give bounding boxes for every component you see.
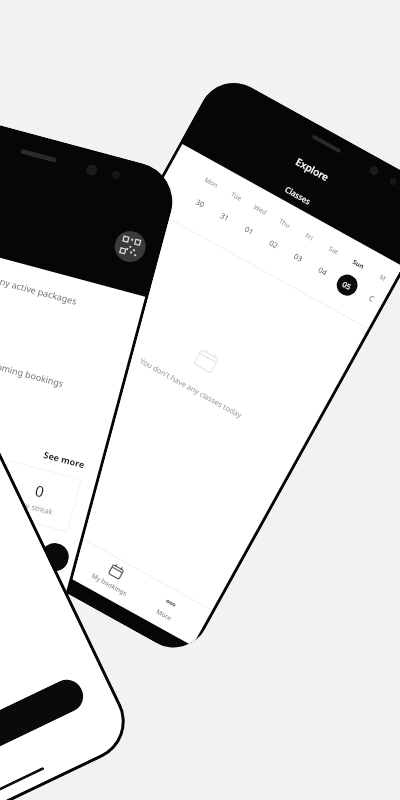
staticText: Mon (203, 175, 220, 190)
button[interactable]: 04 (305, 254, 340, 287)
button[interactable]: More (130, 576, 205, 642)
button[interactable]: See more (0, 390, 86, 470)
staticText: 0 (33, 480, 47, 502)
staticText: M (378, 272, 388, 283)
button[interactable]: 02 (256, 227, 291, 260)
staticText: Thu (277, 216, 292, 230)
button[interactable]: 01 (231, 214, 267, 246)
button[interactable]: Explore (195, 99, 400, 240)
button[interactable]: Scan QR code (111, 227, 149, 265)
button[interactable]: Classes (182, 126, 400, 264)
staticText: Tue (229, 190, 243, 203)
button[interactable]: Add (38, 540, 72, 574)
button[interactable]: 03 (280, 241, 316, 274)
staticText: Explore (293, 154, 332, 184)
staticText: day streak (16, 498, 55, 517)
staticText: You don't have any upcoming bookings (0, 334, 65, 389)
button[interactable]: Explore (21, 516, 95, 581)
staticText: More (155, 607, 174, 623)
staticText: See more (43, 448, 86, 470)
button[interactable]: My bookings (75, 546, 150, 611)
staticText: 31 (219, 210, 231, 223)
staticText: 04 (316, 264, 329, 278)
staticText: 03 (292, 251, 305, 264)
button[interactable]: C (354, 282, 389, 314)
staticText: Explore (43, 545, 67, 564)
staticText: C (367, 293, 376, 304)
button[interactable]: Get started (0, 674, 89, 800)
button[interactable]: 05 (329, 268, 365, 301)
staticText: 01 (243, 224, 256, 237)
staticText: My bookings (90, 571, 129, 598)
staticText: Fri (304, 231, 315, 243)
button[interactable]: Home (0, 487, 40, 551)
button[interactable]: 30 (182, 187, 218, 219)
button[interactable]: 31 (207, 200, 242, 233)
button[interactable]: 0 (0, 460, 82, 533)
staticText: Wed (252, 202, 269, 217)
staticText: Sun (351, 257, 367, 271)
staticText: You don't have any active packages (0, 257, 78, 307)
staticText: 02 (268, 237, 280, 250)
staticText: 05 (340, 279, 353, 292)
button[interactable]: 0 (378, 295, 390, 315)
staticText: You don't have any classes today (138, 355, 244, 420)
staticText: 30 (194, 197, 207, 210)
staticText: Sat (327, 244, 340, 257)
staticText: Classes (283, 183, 313, 207)
